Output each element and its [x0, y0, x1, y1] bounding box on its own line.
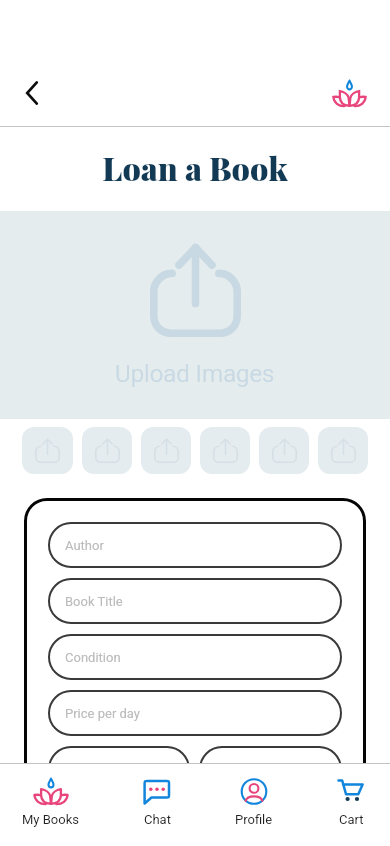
staticText: From	[65, 762, 96, 777]
button[interactable]: Add image	[318, 427, 368, 474]
button[interactable]: Add image	[141, 427, 191, 474]
button[interactable]: Add image	[200, 427, 250, 474]
button[interactable]: Price per day	[48, 690, 342, 736]
button[interactable]: To	[199, 746, 342, 792]
button[interactable]: From	[48, 746, 190, 792]
staticText: Loan a Book	[102, 146, 288, 189]
button[interactable]: My Books	[22, 764, 79, 846]
button[interactable]: Book Title	[48, 578, 342, 624]
staticText: Author	[65, 538, 104, 553]
button[interactable]: Upload Images	[0, 211, 390, 419]
staticText: My Books	[22, 812, 79, 827]
staticText: Profile	[235, 812, 273, 827]
staticText: To	[216, 762, 231, 777]
button[interactable]: Add image	[82, 427, 132, 474]
button[interactable]: Add image	[259, 427, 309, 474]
button[interactable]: App logo	[330, 69, 369, 107]
staticText: Price per day	[65, 706, 140, 721]
button[interactable]: Back	[11, 72, 53, 114]
button[interactable]: Chat	[140, 764, 174, 846]
button[interactable]: Author	[48, 522, 342, 568]
staticText: Condition	[65, 650, 121, 665]
button[interactable]: Profile	[235, 764, 273, 846]
button[interactable]: Condition	[48, 634, 342, 680]
staticText: Chat	[144, 812, 171, 827]
staticText: Book Title	[65, 594, 123, 609]
staticText: Upload Images	[115, 360, 275, 388]
button[interactable]: Add image	[22, 427, 73, 474]
staticText: Cart	[339, 812, 364, 827]
button[interactable]: Cart	[334, 764, 368, 846]
